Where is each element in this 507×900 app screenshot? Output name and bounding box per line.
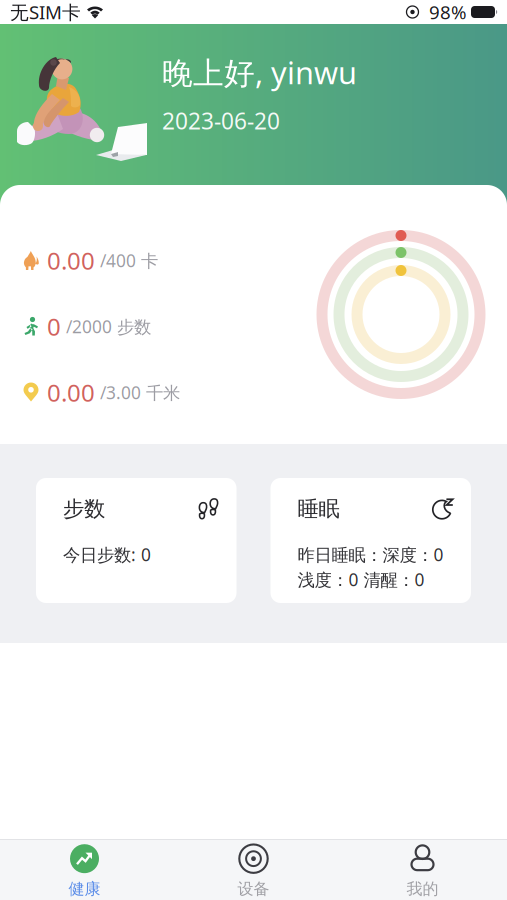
staticText: 晚上好, yinwu: [162, 52, 357, 93]
staticText: 0: [47, 311, 61, 342]
staticText: 我的: [406, 879, 438, 899]
button[interactable]: 设备: [169, 836, 338, 900]
staticText: /400 卡: [100, 249, 158, 272]
staticText: 昨日睡眠：深度：0: [297, 543, 443, 566]
staticText: 0.00: [47, 377, 95, 408]
button[interactable]: 健康: [0, 836, 169, 900]
staticText: 睡眠: [297, 496, 339, 522]
staticText: 步数: [63, 496, 105, 522]
staticText: 无SIM卡: [10, 0, 81, 24]
staticText: 浅度：0 清醒：0: [297, 568, 424, 591]
staticText: 今日步数: 0: [63, 543, 151, 566]
staticText: 98%: [429, 0, 467, 24]
button[interactable]: 我的: [338, 836, 507, 900]
staticText: 健康: [68, 879, 100, 899]
staticText: /3.00 千米: [100, 381, 180, 404]
staticText: 2023-06-20: [162, 106, 280, 136]
staticText: /2000 步数: [66, 315, 151, 338]
staticText: 设备: [237, 879, 269, 899]
staticText: 0.00: [47, 245, 95, 276]
